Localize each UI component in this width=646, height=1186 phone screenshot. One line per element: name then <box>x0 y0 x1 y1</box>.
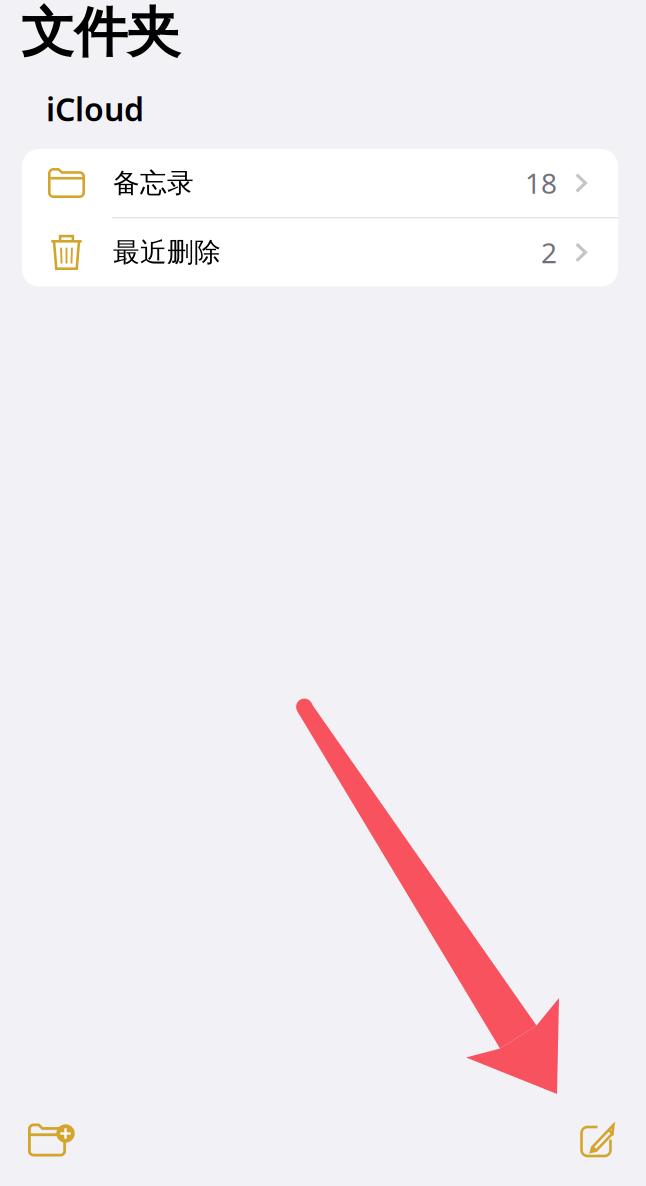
button[interactable]: 最近删除 <box>22 218 618 286</box>
button[interactable]: New Folder <box>0 1109 98 1170</box>
button[interactable]: New Note <box>555 1108 646 1172</box>
staticText: 18 <box>525 164 557 202</box>
staticText: 最近删除 <box>113 236 221 269</box>
staticText: 2 <box>541 234 557 271</box>
staticText: iCloud <box>46 87 144 130</box>
staticText: 文件夹 <box>21 0 180 65</box>
staticText: 备忘录 <box>113 167 194 199</box>
button[interactable]: 备忘录 <box>22 149 618 217</box>
